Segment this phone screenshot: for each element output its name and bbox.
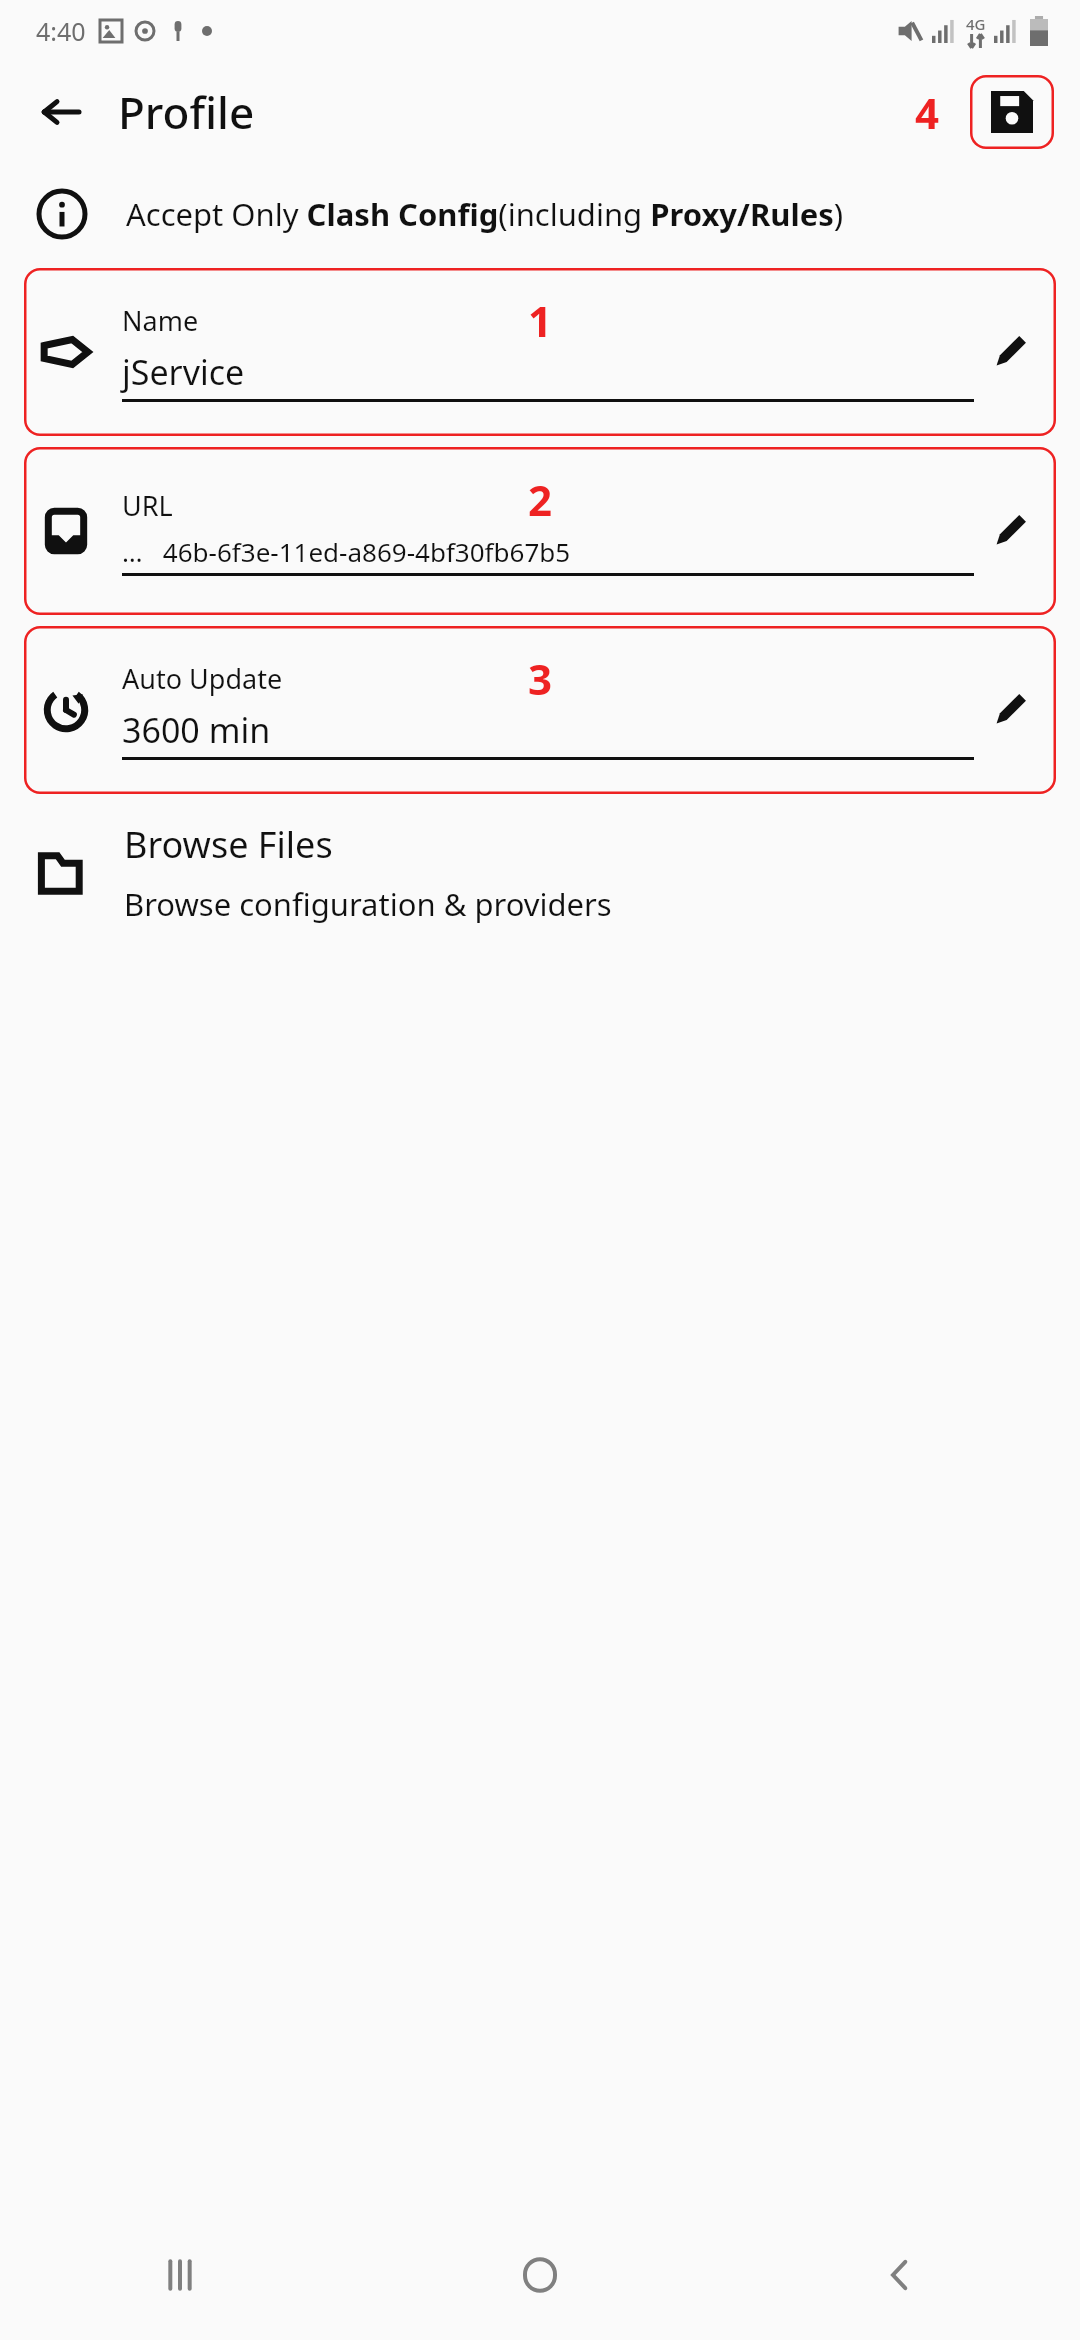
staticText: … 46b-6f3e-11ed-a869-4bf30fb67b5 xyxy=(122,534,571,569)
button[interactable]: Auto Update xyxy=(24,626,1056,794)
button[interactable]: Accept Only Clash Config(including Proxy… xyxy=(0,184,1080,244)
button[interactable]: Edit Auto Update xyxy=(982,682,1038,738)
staticText: Accept Only Clash Config(including Proxy… xyxy=(126,193,843,235)
button[interactable]: URL xyxy=(24,447,1056,615)
staticText: 3600 min xyxy=(122,707,271,753)
button[interactable]: Name xyxy=(24,268,1056,436)
staticText: 3 xyxy=(528,650,553,707)
staticText: 2 xyxy=(528,471,553,528)
staticText: 4G xyxy=(966,14,986,34)
staticText: 4 xyxy=(915,84,940,141)
staticText: Auto Update xyxy=(122,660,283,697)
button[interactable]: Edit Name xyxy=(982,324,1038,380)
button[interactable]: Back xyxy=(720,2210,1080,2340)
button[interactable]: Edit URL xyxy=(982,503,1038,559)
button[interactable]: Save xyxy=(970,75,1054,149)
button[interactable]: Recents xyxy=(0,2210,360,2340)
staticText: Browse Files xyxy=(124,820,333,869)
button[interactable]: Home xyxy=(360,2210,720,2340)
staticText: 4:40 xyxy=(36,14,86,48)
staticText: Profile xyxy=(118,82,255,142)
button[interactable]: Back xyxy=(28,79,94,145)
staticText: Browse configuration & providers xyxy=(124,883,612,925)
button[interactable]: Browse Files xyxy=(0,810,1080,935)
staticText: 1 xyxy=(528,292,553,349)
staticText: URL xyxy=(122,487,173,524)
staticText: Name xyxy=(122,302,199,339)
staticText: jService xyxy=(122,349,245,395)
